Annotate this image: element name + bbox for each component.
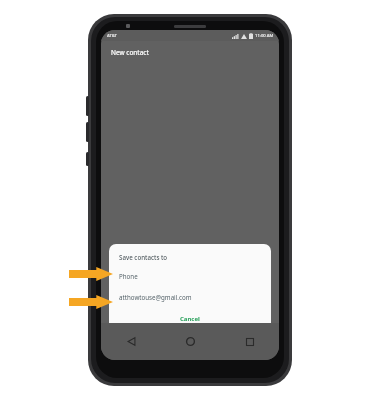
staticText: AT&T bbox=[107, 33, 117, 39]
staticText: atthowtouse@gmail.com bbox=[119, 293, 192, 301]
button[interactable]: Home bbox=[161, 323, 220, 360]
other: Pointer to Gmail account option bbox=[69, 295, 113, 309]
staticText: Save contacts to bbox=[119, 253, 168, 261]
button[interactable]: Cancel bbox=[119, 313, 261, 325]
button[interactable]: Recent apps bbox=[220, 323, 279, 360]
other: Pointer to Phone option bbox=[69, 267, 113, 281]
button[interactable]: atthowtouse@gmail.com bbox=[119, 293, 261, 301]
staticText: 11:00 AM bbox=[255, 33, 274, 39]
button[interactable]: Phone bbox=[119, 272, 261, 280]
staticText: Cancel bbox=[180, 315, 200, 323]
button[interactable]: Back bbox=[101, 323, 161, 360]
staticText: New contact bbox=[111, 48, 149, 57]
staticText: Phone bbox=[119, 272, 138, 280]
